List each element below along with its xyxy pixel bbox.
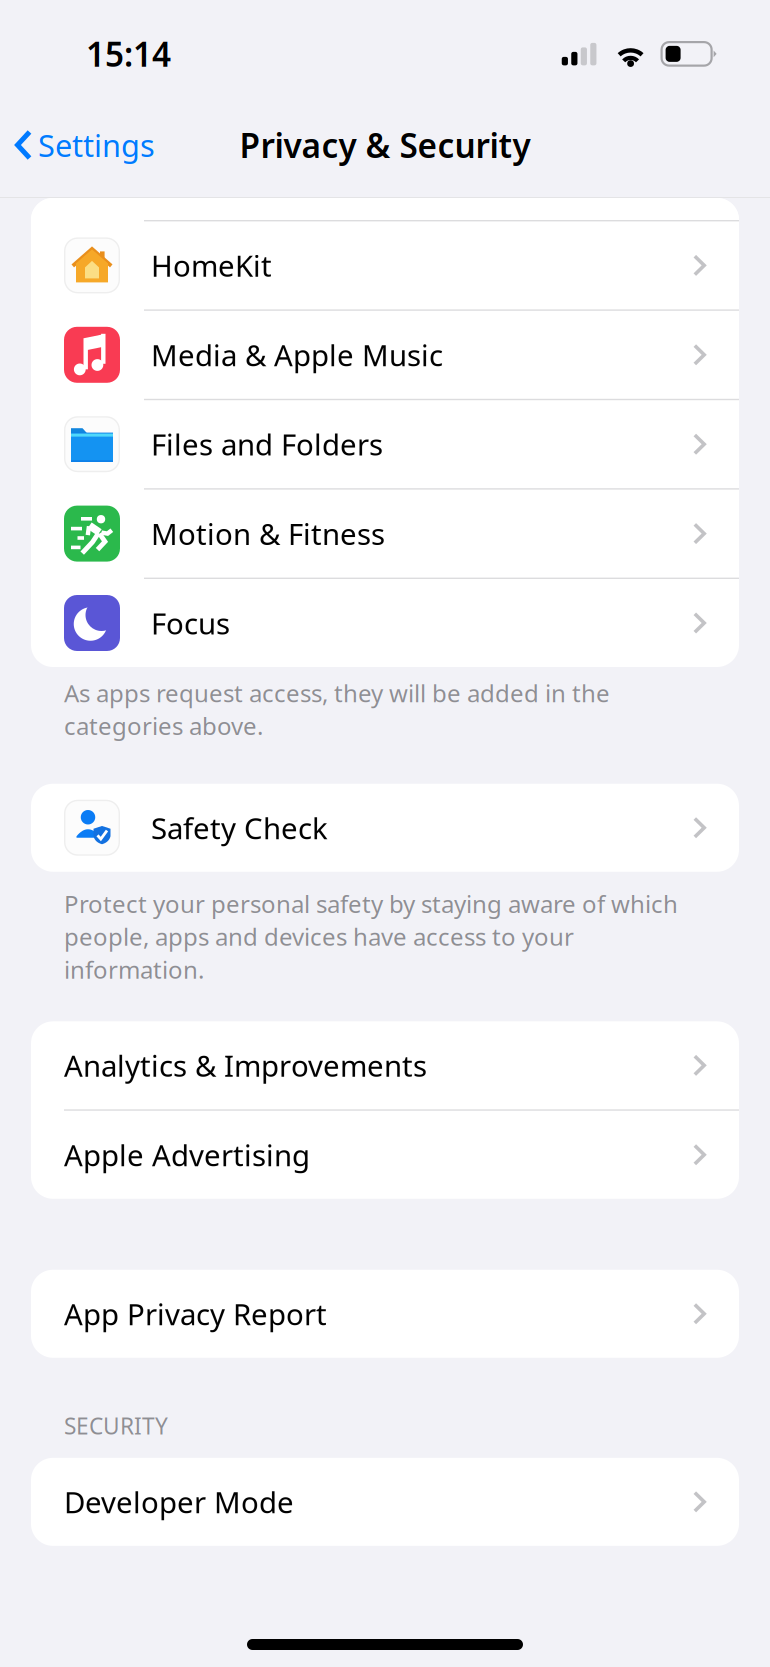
staticText: Analytics & Improvements <box>64 1046 427 1085</box>
button[interactable]: Motion & Fitness <box>31 490 739 578</box>
button[interactable]: Focus <box>31 579 739 667</box>
staticText: Settings <box>38 125 155 165</box>
staticText: HomeKit <box>151 246 272 285</box>
button[interactable]: Analytics & Improvements <box>31 1021 739 1109</box>
staticText: Files and Folders <box>151 425 383 464</box>
staticText: SECURITY <box>64 1411 168 1441</box>
staticText: Focus <box>151 603 230 642</box>
staticText: Media & Apple Music <box>151 335 443 374</box>
button[interactable]: Settings <box>0 111 155 179</box>
button[interactable]: App Privacy Report <box>31 1270 739 1358</box>
button[interactable]: Media & Apple Music <box>31 311 739 399</box>
staticText: Safety Check <box>151 808 328 847</box>
staticText: Developer Mode <box>64 1482 294 1521</box>
button[interactable]: Apple Advertising <box>31 1111 739 1199</box>
staticText: Apple Advertising <box>64 1135 310 1174</box>
staticText: Motion & Fitness <box>151 514 385 553</box>
staticText: As apps request access, they will be add… <box>64 677 610 742</box>
staticText: App Privacy Report <box>64 1294 327 1333</box>
staticText: 15:14 <box>86 32 171 76</box>
button[interactable]: Files and Folders <box>31 400 739 488</box>
staticText: Privacy & Security <box>239 123 530 167</box>
button[interactable]: HomeKit <box>31 221 739 309</box>
button[interactable]: Developer Mode <box>31 1458 739 1546</box>
staticText: Protect your personal safety by staying … <box>64 888 678 985</box>
button[interactable]: Safety Check <box>31 784 739 872</box>
